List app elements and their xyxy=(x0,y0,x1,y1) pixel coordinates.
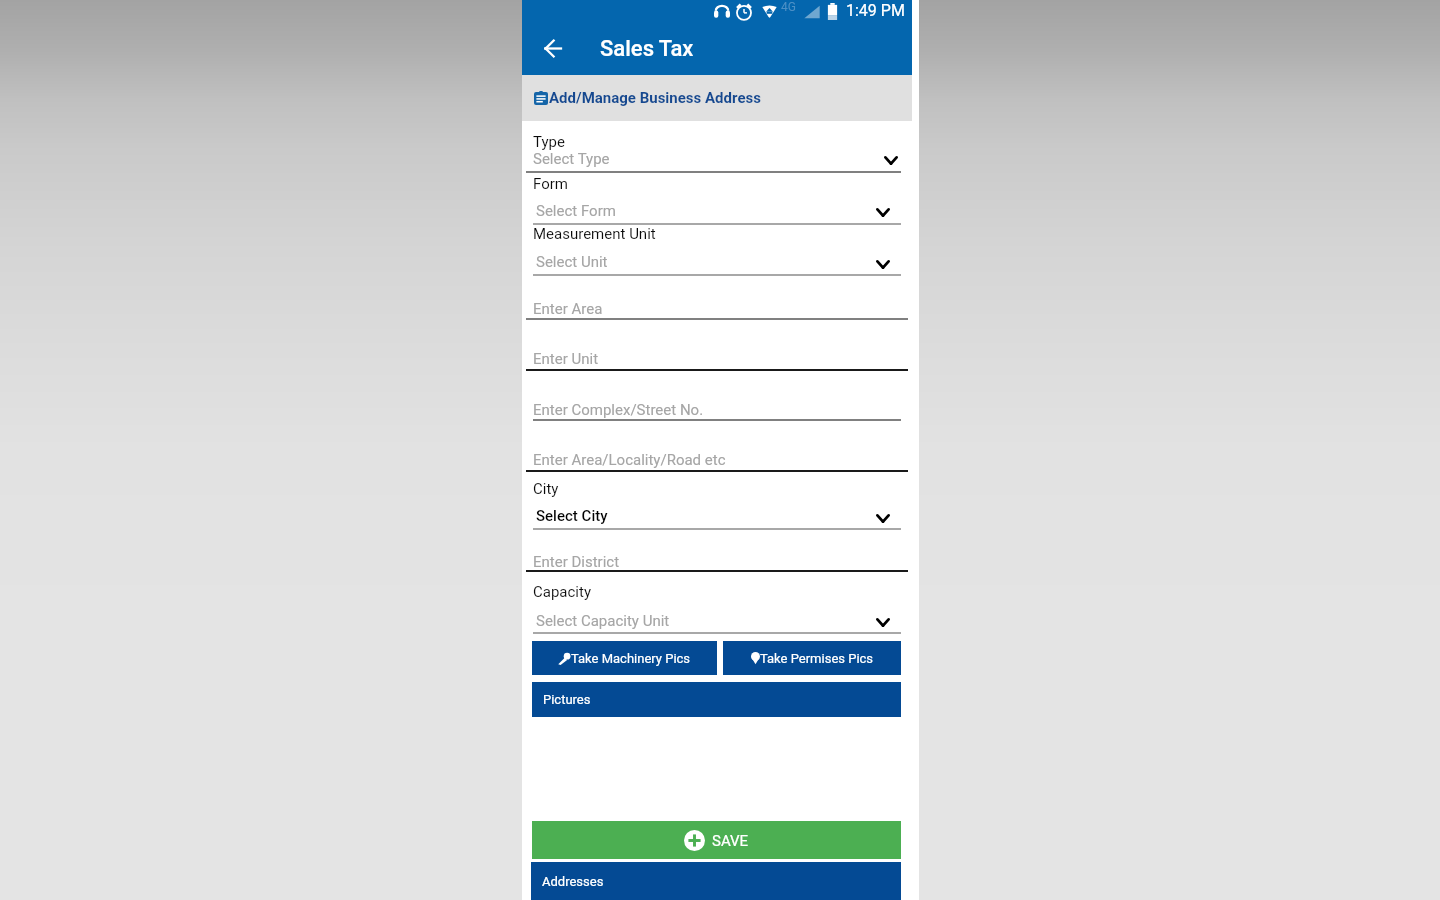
staticText: Select Form xyxy=(536,202,616,220)
button[interactable]: Take Permises Pics xyxy=(723,641,901,675)
staticText: Enter District xyxy=(533,553,620,571)
button[interactable] xyxy=(524,296,908,320)
staticText: Sales Tax xyxy=(600,36,694,62)
button[interactable]: Addresses xyxy=(531,862,901,900)
staticText: Take Permises Pics xyxy=(760,651,874,666)
button[interactable] xyxy=(524,447,908,472)
button[interactable] xyxy=(531,397,901,421)
button[interactable]: SAVE xyxy=(532,821,901,859)
button[interactable]: Pictures xyxy=(532,682,901,717)
staticText: Select Type xyxy=(533,150,610,168)
staticText: Select Capacity Unit xyxy=(536,612,670,630)
button[interactable] xyxy=(524,346,908,371)
staticText: 1:49 PM xyxy=(846,1,905,20)
staticText: Pictures xyxy=(543,692,591,707)
button[interactable] xyxy=(524,146,901,173)
button[interactable]: Add/Manage Business Address xyxy=(522,75,912,121)
staticText: Add/Manage Business Address xyxy=(549,89,761,107)
button[interactable]: Take Machinery Pics xyxy=(532,641,717,675)
button[interactable] xyxy=(531,249,901,276)
staticText: Take Machinery Pics xyxy=(571,651,691,666)
staticText: Type xyxy=(533,133,565,151)
staticText: Enter Area/Locality/Road etc xyxy=(533,451,726,469)
staticText: Addresses xyxy=(542,874,604,889)
button[interactable]: Back xyxy=(530,26,575,71)
staticText: 4G xyxy=(781,0,796,14)
staticText: Select Unit xyxy=(536,253,608,271)
staticText: Capacity xyxy=(533,583,592,601)
button[interactable] xyxy=(531,198,901,225)
button[interactable] xyxy=(524,549,908,572)
staticText: SAVE xyxy=(712,832,749,850)
staticText: Measurement Unit xyxy=(533,225,656,243)
staticText: City xyxy=(533,480,559,498)
staticText: Enter Area xyxy=(533,300,603,318)
staticText: Form xyxy=(533,175,568,193)
staticText: Select City xyxy=(536,507,608,525)
staticText: Enter Unit xyxy=(533,350,599,368)
button[interactable] xyxy=(531,608,901,634)
staticText: Enter Complex/Street No. xyxy=(533,401,704,419)
button[interactable] xyxy=(531,503,901,530)
